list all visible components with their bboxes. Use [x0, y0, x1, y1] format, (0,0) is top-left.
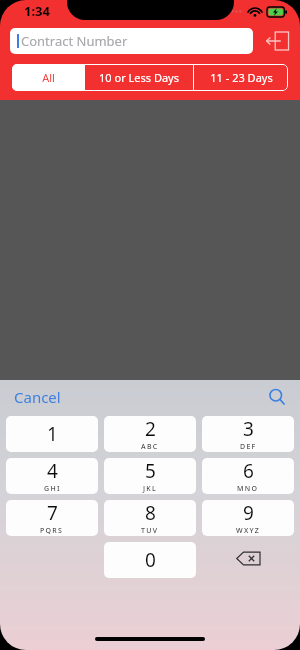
staticText: All — [42, 70, 55, 85]
staticText: Contract Number — [21, 32, 128, 50]
staticText: 3 — [243, 416, 254, 442]
button[interactable]: Contract Number — [10, 28, 253, 54]
staticText: 8 — [145, 500, 156, 526]
button[interactable]: Cancel — [0, 382, 73, 412]
button[interactable]: Delete — [227, 542, 269, 574]
staticText: JKL — [143, 484, 158, 494]
staticText: GHI — [44, 484, 61, 494]
staticText: MNO — [237, 484, 259, 494]
button[interactable]: 10 or Less Days — [85, 64, 193, 91]
staticText: ABC — [141, 442, 159, 452]
staticText: 5 — [145, 458, 156, 484]
button[interactable]: 7 — [6, 500, 98, 536]
staticText: TUV — [141, 526, 159, 536]
staticText: 0 — [145, 547, 156, 573]
staticText: 9 — [243, 500, 254, 526]
button[interactable]: 9 — [202, 500, 294, 536]
staticText: PQRS — [40, 526, 64, 536]
button[interactable]: 6 — [202, 458, 294, 494]
button[interactable]: 5 — [104, 458, 196, 494]
button[interactable]: 1 — [6, 416, 98, 452]
staticText: 7 — [47, 500, 58, 526]
staticText: Cancel — [14, 387, 61, 407]
staticText: 6 — [243, 458, 254, 484]
button[interactable]: 8 — [104, 500, 196, 536]
staticText: DEF — [240, 442, 257, 452]
staticText: 11 - 23 Days — [210, 70, 273, 85]
staticText: 4 — [47, 458, 58, 484]
button[interactable]: 2 — [104, 416, 196, 452]
staticText: WXYZ — [236, 526, 261, 536]
staticText: 1:34 — [24, 2, 50, 20]
button[interactable]: 0 — [104, 542, 196, 578]
button[interactable]: All — [12, 64, 84, 91]
button[interactable]: Search — [264, 384, 290, 410]
button[interactable]: Log out — [260, 24, 294, 58]
staticText: 2 — [145, 416, 156, 442]
staticText: 1 — [47, 421, 58, 447]
staticText: 10 or Less Days — [99, 70, 179, 85]
button[interactable]: 4 — [6, 458, 98, 494]
button[interactable]: 3 — [202, 416, 294, 452]
button[interactable]: 11 - 23 Days — [194, 64, 288, 91]
